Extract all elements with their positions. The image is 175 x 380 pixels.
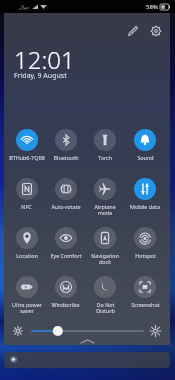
button[interactable]: Collapse panel bbox=[76, 338, 98, 345]
staticText: Ultra power saver bbox=[12, 301, 42, 315]
staticText: Do Not Disturb bbox=[96, 301, 115, 315]
button[interactable] bbox=[4, 322, 170, 340]
button[interactable]: Settings bbox=[149, 24, 163, 38]
staticText: NFC bbox=[21, 203, 32, 210]
staticText: 12:01 bbox=[14, 43, 75, 76]
button[interactable]: Ultra power saver bbox=[7, 276, 46, 325]
button[interactable]: Eye Comfort bbox=[46, 227, 85, 276]
staticText: Location bbox=[16, 252, 38, 259]
button[interactable]: Navigation dock bbox=[85, 227, 125, 276]
button[interactable]: Location bbox=[7, 227, 46, 276]
button[interactable]: Sound bbox=[125, 129, 165, 178]
button[interactable]: Bluetooth bbox=[46, 129, 85, 178]
button[interactable]: Screenshot bbox=[125, 276, 165, 325]
button[interactable]: Torch bbox=[85, 129, 125, 178]
button[interactable] bbox=[4, 352, 170, 368]
staticText: Mobile data bbox=[130, 203, 160, 210]
button[interactable]: Edit quick settings bbox=[126, 24, 140, 38]
button[interactable]: NFC bbox=[7, 178, 46, 227]
button[interactable]: Windscribe bbox=[46, 276, 85, 325]
staticText: BTHub6-7QR8 bbox=[9, 154, 45, 161]
staticText: Torch bbox=[98, 154, 112, 161]
staticText: Airplane mode bbox=[94, 203, 116, 217]
staticText: Screenshot bbox=[131, 301, 160, 308]
button[interactable]: Auto-rotate bbox=[46, 178, 85, 227]
button[interactable]: Mobile data bbox=[125, 178, 165, 227]
staticText: Bluetooth bbox=[53, 154, 79, 161]
staticText: Sound bbox=[137, 154, 154, 161]
staticText: 58% bbox=[146, 3, 158, 11]
button[interactable]: Hotspot bbox=[125, 227, 165, 276]
staticText: Hotspot bbox=[135, 252, 156, 259]
staticText: Friday, 9 August bbox=[14, 71, 67, 81]
staticText: Navigation dock bbox=[91, 252, 119, 266]
staticText: Auto-rotate bbox=[51, 203, 81, 210]
staticText: Windscribe bbox=[51, 301, 80, 308]
button[interactable]: Do Not Disturb bbox=[85, 276, 125, 325]
button[interactable]: Airplane mode bbox=[85, 178, 125, 227]
staticText: جوال bbox=[19, 4, 30, 10]
button[interactable]: BTHub6-7QR8 bbox=[7, 129, 46, 178]
staticText: Eye Comfort bbox=[50, 252, 82, 259]
